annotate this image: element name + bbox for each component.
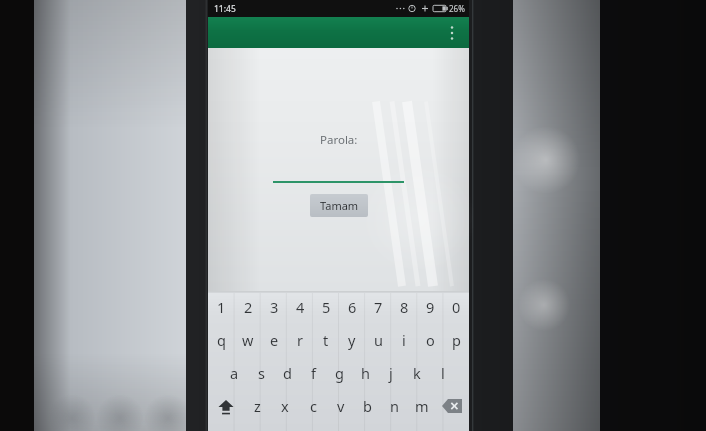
button[interactable]: Shift bbox=[208, 389, 243, 423]
button[interactable]: g bbox=[326, 356, 352, 389]
staticText: 7 bbox=[374, 297, 383, 317]
button[interactable]: Password field bbox=[273, 170, 404, 184]
staticText: n bbox=[390, 396, 399, 416]
button[interactable]: m bbox=[408, 389, 435, 423]
button[interactable]: 9 bbox=[417, 291, 443, 323]
button[interactable]: z bbox=[243, 389, 271, 423]
staticText: Parola: bbox=[320, 132, 358, 148]
staticText: q bbox=[217, 330, 226, 350]
staticText: 11:45 bbox=[214, 3, 236, 15]
button[interactable]: c bbox=[299, 389, 327, 423]
button[interactable]: f bbox=[300, 356, 326, 389]
button[interactable]: y bbox=[339, 323, 365, 356]
staticText: c bbox=[310, 396, 317, 416]
staticText: h bbox=[361, 363, 370, 383]
staticText: d bbox=[283, 363, 292, 383]
staticText: 2 bbox=[244, 297, 253, 317]
button[interactable]: j bbox=[378, 356, 404, 389]
staticText: 1 bbox=[217, 297, 226, 317]
staticText: l bbox=[441, 363, 445, 383]
button[interactable]: 6 bbox=[339, 291, 365, 323]
staticText: t bbox=[323, 330, 329, 350]
button[interactable]: h bbox=[352, 356, 378, 389]
button[interactable]: 5 bbox=[313, 291, 339, 323]
staticText: 4 bbox=[296, 297, 305, 317]
staticText: 3 bbox=[270, 297, 279, 317]
staticText: 8 bbox=[400, 297, 409, 317]
button[interactable]: r bbox=[287, 323, 313, 356]
staticText: a bbox=[230, 363, 239, 383]
button[interactable]: Backspace bbox=[435, 389, 469, 423]
staticText: r bbox=[297, 330, 303, 350]
staticText: m bbox=[415, 396, 429, 416]
staticText: 26% bbox=[449, 3, 465, 14]
staticText: 5 bbox=[322, 297, 331, 317]
staticText: f bbox=[311, 363, 316, 383]
staticText: p bbox=[452, 330, 461, 350]
button[interactable]: t bbox=[313, 323, 339, 356]
button[interactable]: a bbox=[221, 356, 248, 389]
staticText: i bbox=[402, 330, 406, 350]
button[interactable]: b bbox=[354, 389, 381, 423]
button[interactable]: 3 bbox=[261, 291, 287, 323]
button[interactable]: l bbox=[430, 356, 456, 389]
button[interactable]: p bbox=[443, 323, 469, 356]
staticText: u bbox=[374, 330, 383, 350]
staticText: e bbox=[270, 330, 279, 350]
staticText: v bbox=[337, 396, 345, 416]
staticText: Tamam bbox=[320, 198, 359, 213]
staticText: 0 bbox=[452, 297, 461, 317]
button[interactable]: 7 bbox=[365, 291, 391, 323]
button[interactable]: k bbox=[404, 356, 430, 389]
staticText: x bbox=[281, 396, 289, 416]
button[interactable]: v bbox=[327, 389, 354, 423]
button[interactable]: Tamam bbox=[310, 194, 368, 217]
button[interactable]: More options bbox=[443, 19, 461, 47]
staticText: g bbox=[335, 363, 344, 383]
staticText: j bbox=[389, 363, 393, 383]
button[interactable]: u bbox=[365, 323, 391, 356]
button[interactable]: 8 bbox=[391, 291, 417, 323]
button[interactable]: n bbox=[381, 389, 408, 423]
staticText: y bbox=[348, 330, 356, 350]
staticText: b bbox=[363, 396, 372, 416]
button[interactable]: 1 bbox=[208, 291, 235, 323]
staticText: o bbox=[426, 330, 435, 350]
staticText: w bbox=[242, 330, 254, 350]
button[interactable]: w bbox=[235, 323, 261, 356]
staticText: s bbox=[258, 363, 265, 383]
staticText: 6 bbox=[348, 297, 357, 317]
button[interactable]: e bbox=[261, 323, 287, 356]
button[interactable]: i bbox=[391, 323, 417, 356]
staticText: 9 bbox=[426, 297, 435, 317]
button[interactable]: x bbox=[271, 389, 299, 423]
button[interactable]: 2 bbox=[235, 291, 261, 323]
button[interactable]: 4 bbox=[287, 291, 313, 323]
staticText: k bbox=[413, 363, 421, 383]
button[interactable]: o bbox=[417, 323, 443, 356]
button[interactable]: q bbox=[208, 323, 235, 356]
staticText: z bbox=[254, 396, 261, 416]
button[interactable]: d bbox=[274, 356, 300, 389]
button[interactable]: s bbox=[248, 356, 274, 389]
button[interactable]: 0 bbox=[443, 291, 469, 323]
